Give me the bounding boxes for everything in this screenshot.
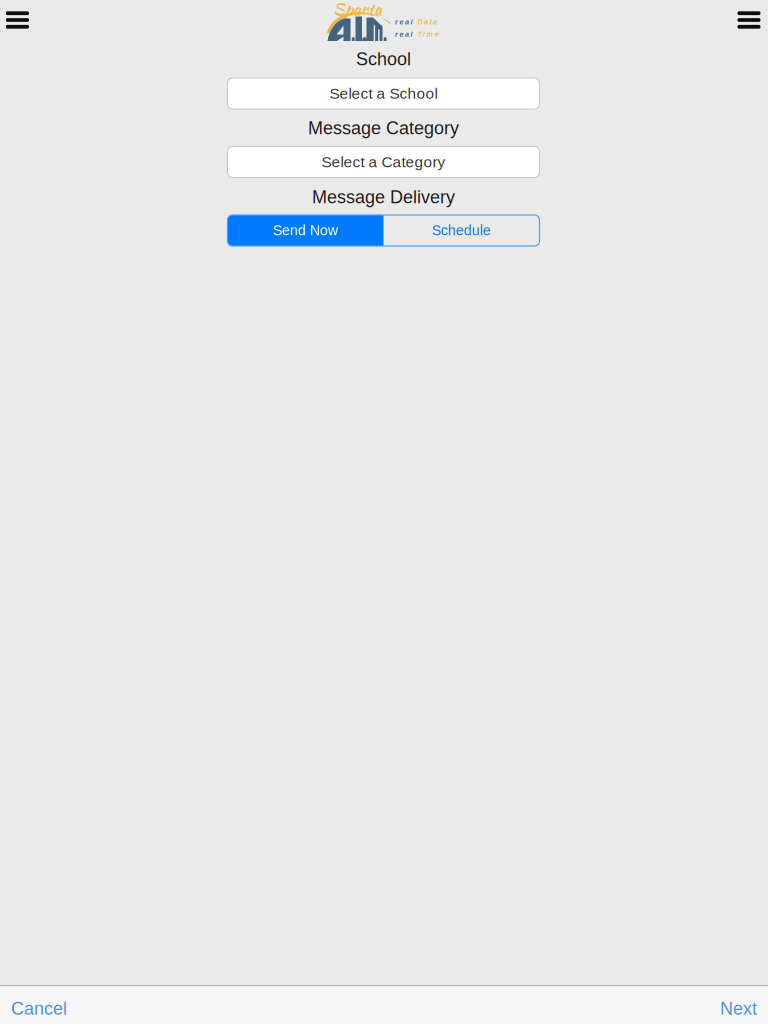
staticText: a (433, 18, 437, 26)
staticText: l (410, 30, 412, 38)
staticText: Select a Category (321, 153, 445, 170)
button[interactable]: Send Now (227, 215, 383, 246)
button[interactable]: More options (727, 1, 768, 39)
staticText: Next (720, 998, 757, 1018)
staticText: t (429, 18, 431, 26)
staticText: l (410, 18, 412, 26)
staticText: i (423, 30, 425, 38)
button[interactable]: Select a School (227, 78, 539, 109)
staticText: e (399, 18, 403, 26)
staticText: T (417, 30, 421, 38)
button[interactable]: Schedule (383, 215, 539, 246)
staticText: a (405, 18, 409, 26)
staticText: e (435, 30, 439, 38)
staticText: Message Delivery (312, 187, 455, 207)
button[interactable]: Select a Category (227, 146, 539, 177)
staticText: r (395, 18, 398, 26)
staticText: Sparta (333, 0, 382, 21)
staticText: a (405, 30, 409, 38)
staticText: a (424, 18, 428, 26)
staticText: Send Now (273, 223, 338, 238)
staticText: Message Category (308, 118, 459, 138)
button[interactable]: Cancel (0, 985, 78, 1024)
staticText: Schedule (432, 223, 491, 238)
staticText: Cancel (11, 998, 67, 1018)
staticText: D (417, 18, 422, 26)
staticText: Select a School (329, 85, 437, 102)
staticText: School (356, 49, 411, 69)
button[interactable]: Next (709, 985, 768, 1024)
staticText: e (399, 30, 403, 38)
button[interactable]: Menu (0, 1, 39, 39)
staticText: r (395, 30, 398, 38)
staticText: m (426, 30, 433, 38)
